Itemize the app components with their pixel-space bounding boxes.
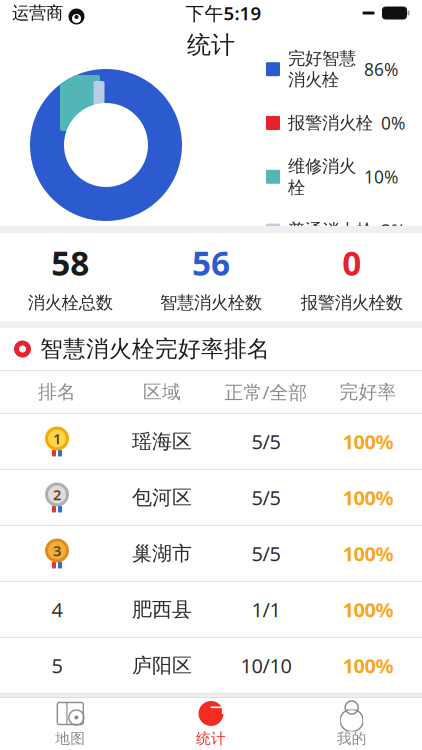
staticText: 巢湖市 [132, 541, 192, 566]
staticText: 3% [381, 219, 405, 242]
staticText: 10/10 [240, 652, 291, 679]
staticText: 我的 [337, 729, 367, 747]
staticText: 3 [53, 541, 61, 560]
staticText: 智慧消火栓数 [160, 292, 262, 313]
staticText: 1 [53, 429, 61, 448]
button[interactable]: 统计 [141, 699, 281, 748]
staticText: 0% [381, 111, 405, 134]
staticText: 运营商 [12, 2, 63, 24]
staticText: 统计 [196, 729, 226, 747]
staticText: 庐阳区 [132, 653, 192, 678]
staticText: 100% [342, 484, 393, 511]
staticText: 统计 [187, 30, 235, 60]
staticText: 智慧消火栓完好率排名 [40, 335, 270, 363]
staticText: 5/5 [251, 540, 280, 567]
staticText: 5/5 [251, 428, 280, 455]
staticText: 2 [53, 485, 61, 504]
staticText: 86% [364, 58, 398, 81]
staticText: 100% [342, 540, 393, 567]
staticText: 下午5:19 [185, 1, 261, 25]
staticText: 完好智慧消火栓 [288, 48, 356, 90]
staticText: 4 [51, 596, 62, 623]
staticText: 包河区 [132, 485, 192, 510]
staticText: 普通消火栓 [288, 220, 373, 241]
staticText: 完好率 [339, 380, 396, 403]
staticText: 100% [342, 652, 393, 679]
staticText: 56 [192, 241, 230, 285]
staticText: 维修消火栓 [288, 155, 356, 198]
staticText: 5 [51, 652, 62, 679]
button[interactable]: 1 [0, 414, 422, 470]
button[interactable]: 5 [0, 638, 422, 694]
staticText: 正常/全部 [224, 380, 307, 404]
button[interactable]: 3 [0, 526, 422, 582]
staticText: 消火栓总数 [28, 292, 113, 313]
staticText: 5/5 [251, 484, 280, 511]
staticText: 10% [364, 165, 398, 188]
staticText: 100% [342, 428, 393, 455]
staticText: 肥西县 [132, 597, 192, 622]
staticText: 排名 [38, 380, 76, 403]
button[interactable]: 4 [0, 582, 422, 638]
staticText: 报警消火栓 [288, 112, 373, 134]
staticText: 58 [51, 241, 89, 285]
button[interactable]: 地图 [0, 699, 141, 748]
button[interactable]: 2 [0, 470, 422, 526]
staticText: 区域 [143, 380, 181, 403]
button[interactable]: 我的 [281, 699, 422, 748]
staticText: 100% [342, 596, 393, 623]
staticText: 1/1 [251, 596, 280, 623]
staticText: 0 [342, 241, 361, 285]
staticText: 报警消火栓数 [301, 292, 403, 313]
staticText: 瑶海区 [132, 429, 192, 454]
staticText: 地图 [55, 729, 85, 747]
